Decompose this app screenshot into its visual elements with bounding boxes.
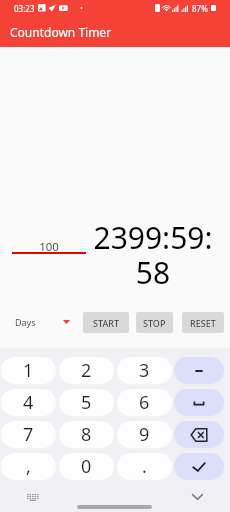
button[interactable]: 6	[117, 389, 172, 416]
button[interactable]: RESET	[182, 312, 224, 333]
button[interactable]: Minus	[174, 357, 224, 384]
staticText: 6	[139, 390, 150, 415]
button[interactable]: 8	[59, 421, 114, 448]
button[interactable]: 0	[59, 453, 114, 480]
button[interactable]: Hide keyboard	[192, 494, 203, 500]
button[interactable]: .	[117, 453, 172, 480]
button[interactable]: ,	[1, 453, 56, 480]
staticText: 7	[23, 422, 34, 447]
button[interactable]: 5	[59, 389, 114, 416]
staticText: START	[93, 317, 120, 329]
staticText: ,	[26, 454, 31, 479]
staticText: Days	[15, 316, 36, 328]
staticText: 9	[139, 422, 150, 447]
staticText: 3	[139, 358, 150, 383]
button[interactable]: Days	[8, 311, 77, 333]
staticText: 4	[23, 390, 34, 415]
button[interactable]: 9	[117, 421, 172, 448]
button[interactable]: 3	[117, 357, 172, 384]
button[interactable]: 1	[1, 357, 56, 384]
staticText: STOP	[143, 317, 166, 329]
button[interactable]: 100	[12, 239, 86, 255]
button[interactable]: 7	[1, 421, 56, 448]
button[interactable]: Switch keyboard	[27, 494, 40, 501]
staticText: Countdown Timer	[10, 24, 112, 40]
button[interactable]: 2	[59, 357, 114, 384]
button[interactable]: Backspace	[174, 421, 224, 448]
button[interactable]: 4	[1, 389, 56, 416]
button[interactable]: Enter	[174, 453, 224, 480]
staticText: 03:23	[14, 3, 35, 14]
staticText: 2	[81, 358, 92, 383]
button[interactable]: START	[83, 312, 129, 333]
staticText: RESET	[190, 317, 216, 329]
staticText: 5	[81, 390, 92, 415]
button[interactable]: Space	[174, 389, 224, 416]
staticText: 1	[23, 358, 34, 383]
staticText: .	[142, 454, 147, 479]
button[interactable]: STOP	[136, 312, 173, 333]
staticText: 87%	[192, 3, 208, 14]
staticText: 8	[81, 422, 92, 447]
staticText: 2399:59:58	[89, 217, 217, 293]
staticText: 0	[81, 454, 92, 479]
